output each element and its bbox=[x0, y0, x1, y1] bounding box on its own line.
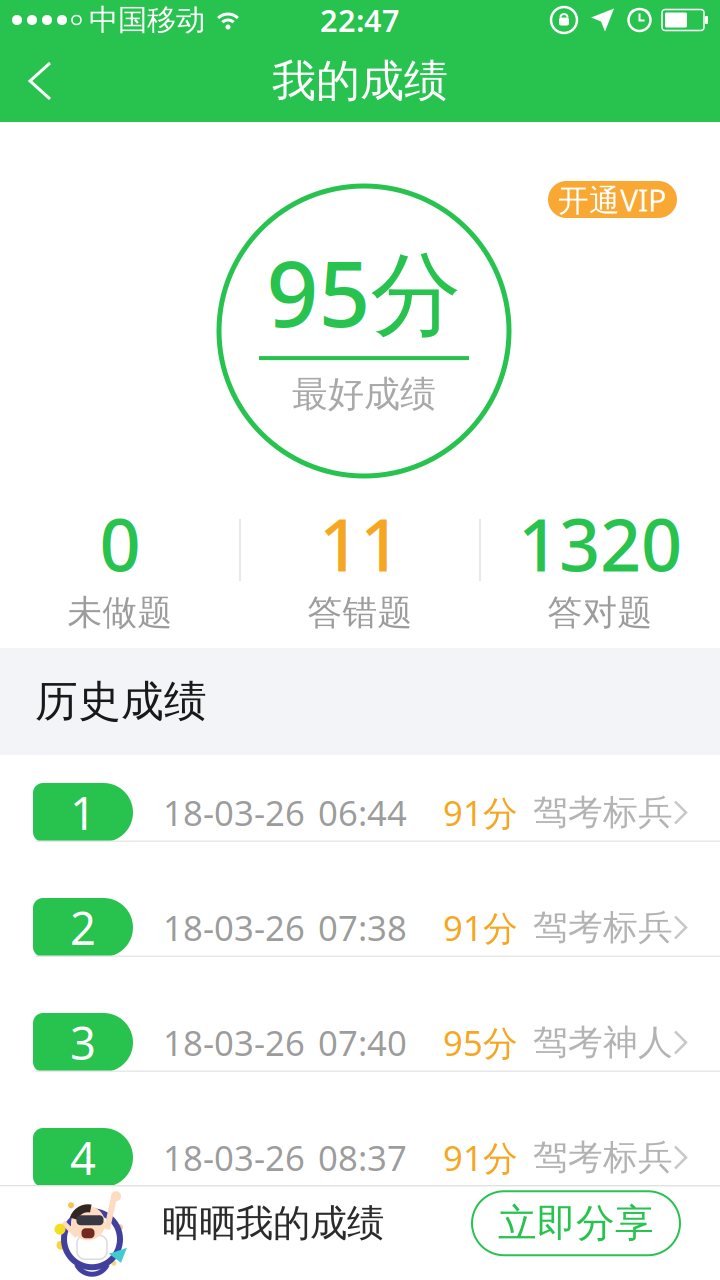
staticText: 0 bbox=[99, 496, 140, 591]
button[interactable]: 4 bbox=[0, 1100, 720, 1215]
staticText: 驾考标兵 bbox=[533, 1136, 673, 1179]
staticText: 开通VIP bbox=[558, 179, 667, 220]
staticText: 驾考标兵 bbox=[533, 906, 673, 949]
button[interactable]: Back bbox=[0, 43, 70, 119]
staticText: 91分 bbox=[443, 1134, 518, 1180]
staticText: 18-03-26 bbox=[163, 789, 305, 835]
staticText: 07:38 bbox=[318, 904, 407, 950]
staticText: 1 bbox=[70, 782, 96, 843]
staticText: 最好成绩 bbox=[292, 372, 436, 416]
staticText: 3 bbox=[70, 1012, 96, 1073]
button[interactable]: 2 bbox=[0, 870, 720, 985]
button[interactable]: 开通VIP bbox=[548, 181, 677, 218]
staticText: 2 bbox=[70, 897, 96, 958]
staticText: 18-03-26 bbox=[163, 1019, 305, 1065]
staticText: 08:37 bbox=[318, 1134, 407, 1180]
staticText: 未做题 bbox=[67, 591, 172, 634]
staticText: 91分 bbox=[443, 789, 518, 835]
staticText: 1320 bbox=[518, 496, 682, 591]
staticText: 中国移动 bbox=[89, 2, 205, 38]
staticText: 我的成绩 bbox=[272, 54, 448, 108]
staticText: 22:47 bbox=[320, 0, 400, 40]
staticText: 07:40 bbox=[318, 1019, 407, 1065]
staticText: 立即分享 bbox=[498, 1199, 654, 1247]
staticText: 驾考神人 bbox=[533, 1021, 673, 1064]
staticText: 18-03-26 bbox=[163, 904, 305, 950]
staticText: 答对题 bbox=[547, 591, 652, 634]
staticText: 晒晒我的成绩 bbox=[162, 1200, 384, 1246]
button[interactable]: 立即分享 bbox=[472, 1191, 680, 1255]
staticText: 4 bbox=[70, 1127, 96, 1188]
button[interactable]: 1 bbox=[0, 755, 720, 870]
staticText: 91分 bbox=[443, 904, 518, 950]
staticText: 95分 bbox=[266, 232, 461, 352]
staticText: 答错题 bbox=[307, 591, 412, 634]
staticText: 驾考标兵 bbox=[533, 791, 673, 834]
staticText: 06:44 bbox=[318, 789, 407, 835]
button[interactable]: 3 bbox=[0, 985, 720, 1100]
staticText: 历史成绩 bbox=[35, 675, 207, 728]
staticText: 18-03-26 bbox=[163, 1134, 305, 1180]
staticText: 95分 bbox=[443, 1019, 518, 1065]
staticText: 11 bbox=[319, 496, 401, 591]
